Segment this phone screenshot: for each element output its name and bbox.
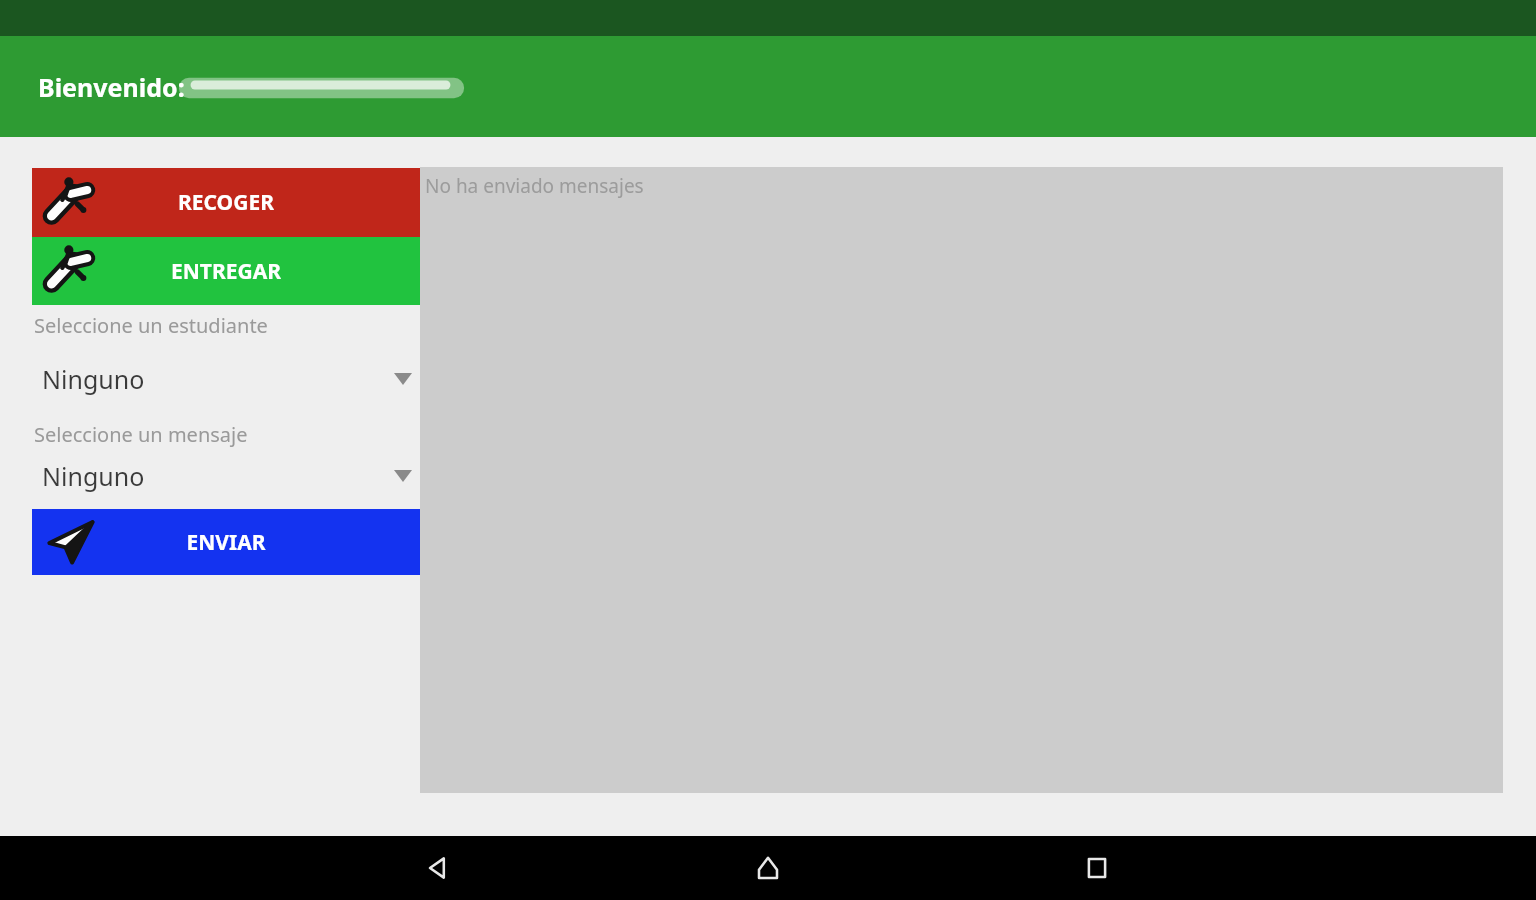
staticText: Seleccione un mensaje (34, 421, 248, 448)
staticText: ENVIAR (32, 528, 420, 557)
staticText: No ha enviado mensajes (425, 173, 644, 199)
button[interactable]: Back (411, 840, 467, 896)
staticText: Seleccione un estudiante (34, 312, 268, 339)
button[interactable]: Home (740, 840, 796, 896)
button[interactable]: RECOGER (32, 168, 420, 237)
button[interactable]: ENTREGAR (32, 237, 420, 305)
staticText: Ninguno (42, 362, 145, 396)
button[interactable]: Ninguno (32, 356, 420, 402)
button[interactable]: Ninguno (32, 453, 420, 499)
button[interactable]: ENVIAR (32, 509, 420, 575)
staticText: RECOGER (32, 188, 420, 217)
button[interactable]: Recents (1069, 840, 1125, 896)
staticText: Ninguno (42, 459, 145, 493)
staticText: ENTREGAR (32, 257, 420, 286)
staticText: Bienvenido: (38, 70, 185, 104)
